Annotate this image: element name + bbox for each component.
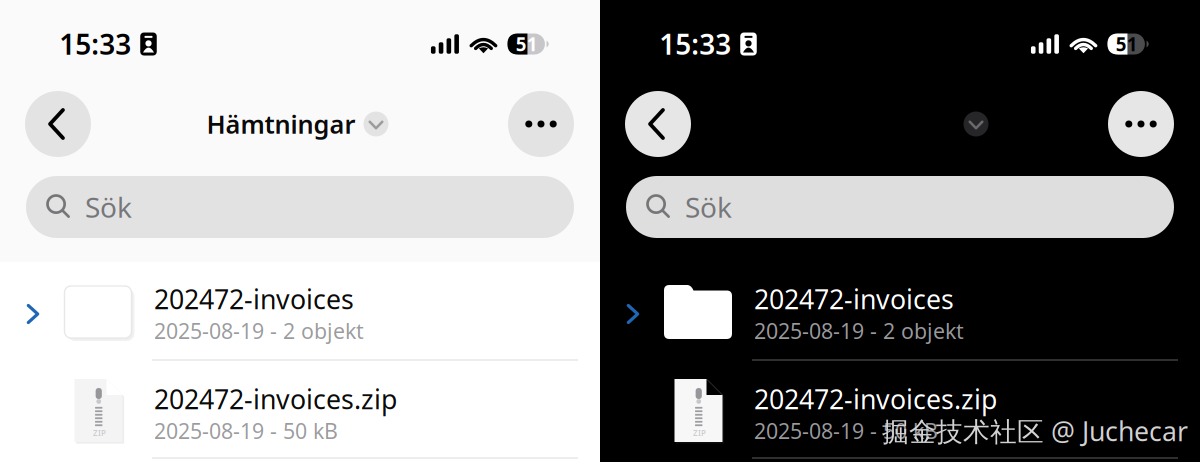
staticText: 202472-invoices (154, 281, 354, 316)
staticText: 202472-invoices.zip (754, 381, 997, 416)
staticText: ZIP (693, 428, 706, 438)
staticText: Sök (85, 188, 132, 226)
staticText: 51 (1116, 32, 1138, 56)
staticText: 15:33 (59, 25, 131, 63)
button[interactable]: 202472-invoices (600, 265, 1200, 359)
button[interactable]: ZIP (0, 361, 600, 457)
button[interactable]: 202472-invoices (0, 265, 600, 359)
button[interactable]: ZIP (600, 361, 1200, 457)
button[interactable]: Back (625, 91, 691, 157)
staticText: 2025-08-19 - 2 objekt (154, 316, 364, 345)
staticText: Hämtningar (206, 107, 355, 141)
staticText: 掘金技术社区 @ Juchecar (882, 413, 1188, 449)
button[interactable]: Folder options (363, 111, 388, 136)
staticText: 202472-invoices.zip (154, 381, 397, 416)
staticText: 15:33 (659, 25, 731, 63)
button[interactable]: More (1108, 91, 1174, 157)
staticText: 51 (516, 32, 538, 56)
staticText: 2025-08-19 - 2 objekt (754, 316, 964, 345)
button[interactable]: Sök (26, 176, 574, 238)
button[interactable]: More (508, 91, 574, 157)
staticText: Sök (685, 188, 732, 226)
button[interactable]: Back (25, 91, 91, 157)
staticText: 2025-08-19 - 50 kB (154, 416, 338, 445)
staticText: 202472-invoices (754, 281, 954, 316)
staticText: ZIP (93, 428, 106, 438)
staticText: 2025-08-19 - 50 kB (754, 416, 938, 445)
button[interactable]: Sök (626, 176, 1174, 238)
button[interactable]: Folder options (963, 111, 988, 136)
